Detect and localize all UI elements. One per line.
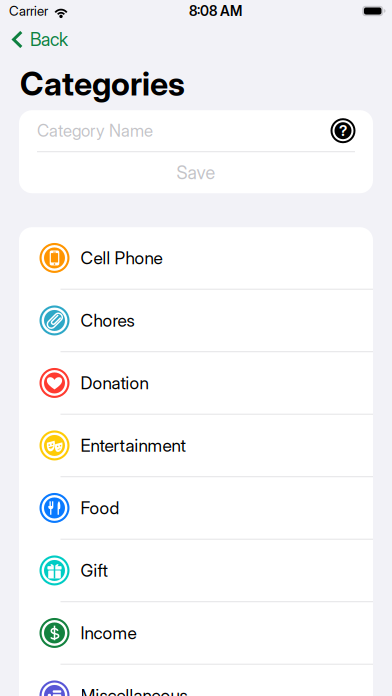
staticText: 8:08 AM	[189, 2, 242, 19]
staticText: Save	[176, 162, 215, 184]
button[interactable]: Cell Phone	[19, 227, 373, 290]
staticText: Donation	[80, 372, 148, 393]
button[interactable]: Entertainment	[19, 415, 373, 477]
staticText: Carrier	[9, 3, 48, 19]
staticText: Gift	[80, 560, 107, 581]
button[interactable]: Back	[0, 22, 110, 54]
staticText: Income	[80, 622, 136, 643]
staticText: Cell Phone	[80, 247, 162, 268]
staticText: Category Name	[37, 120, 153, 141]
button[interactable]: Chores	[19, 290, 373, 352]
button[interactable]: Donation	[19, 352, 373, 415]
button[interactable]: Save	[19, 152, 373, 193]
staticText: Miscellaneous	[80, 685, 187, 696]
button[interactable]: Gift	[19, 540, 373, 602]
staticText: Back	[30, 29, 68, 50]
button[interactable]: Help	[328, 116, 358, 146]
button[interactable]: Miscellaneous	[19, 665, 373, 696]
staticText: ?	[339, 122, 347, 139]
staticText: Entertainment	[80, 435, 185, 456]
staticText: Food	[80, 497, 119, 518]
staticText: Categories	[20, 64, 185, 103]
staticText: Chores	[80, 310, 134, 331]
button[interactable]: Income	[19, 602, 373, 665]
button[interactable]: Food	[19, 477, 373, 540]
